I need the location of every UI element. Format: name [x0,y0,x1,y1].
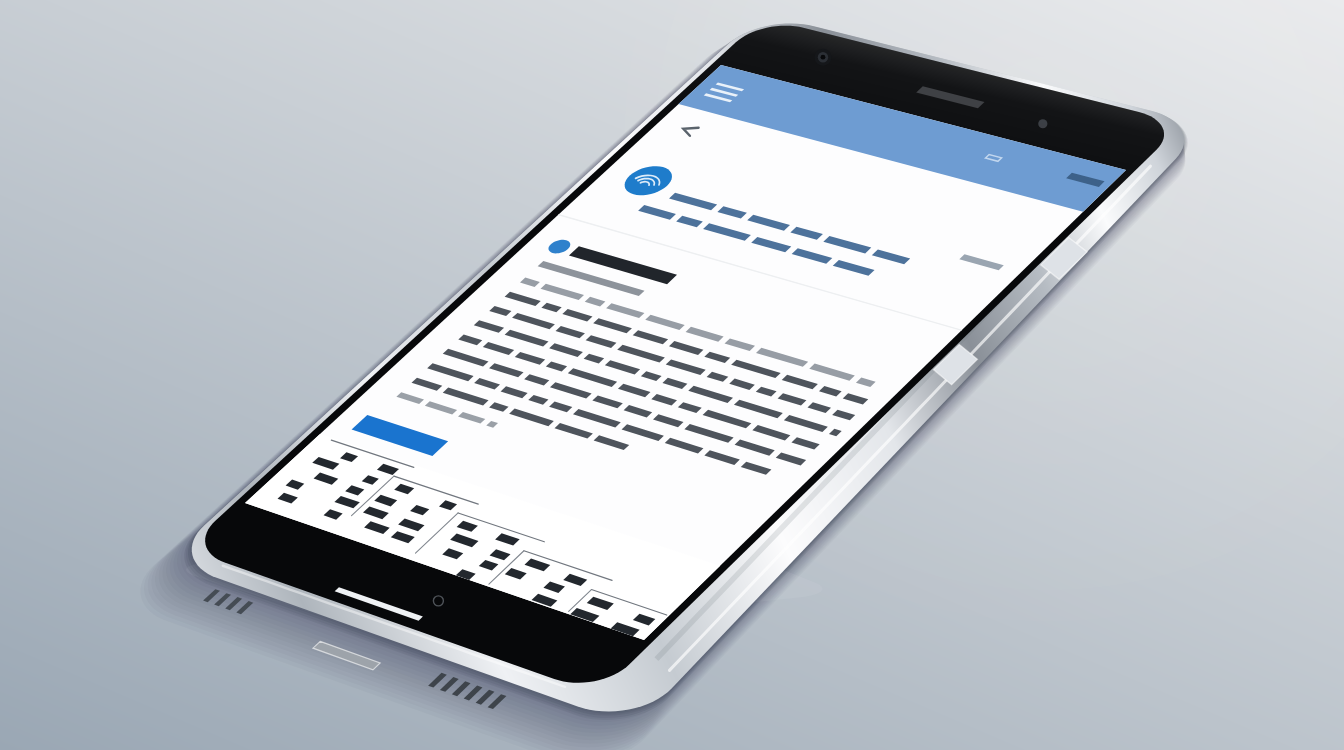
button[interactable]: Smartphone showing a chat application [0,0,1344,750]
